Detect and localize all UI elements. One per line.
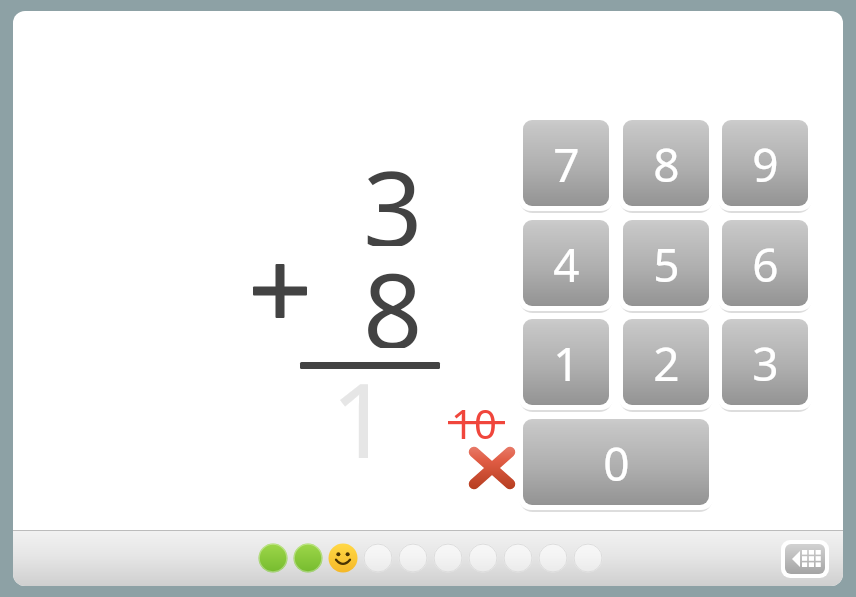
staticText: 6: [752, 233, 779, 296]
button[interactable]: 4: [518, 215, 614, 313]
button[interactable]: 7: [518, 115, 614, 213]
button[interactable]: 9: [717, 115, 813, 213]
button[interactable]: 3: [717, 314, 813, 412]
staticText: 8: [653, 133, 680, 196]
staticText: 10: [451, 396, 497, 442]
button[interactable]: 1: [518, 314, 614, 412]
staticText: 9: [752, 133, 779, 196]
button[interactable]: 5: [618, 215, 714, 313]
staticText: 7: [553, 133, 580, 196]
button[interactable]: 0: [518, 414, 714, 512]
staticText: 2: [653, 332, 680, 395]
staticText: 3: [752, 332, 779, 395]
staticText: 5: [653, 233, 680, 296]
staticText: 4: [553, 233, 580, 296]
staticText: 3: [363, 136, 423, 246]
staticText: 1: [553, 332, 580, 395]
button[interactable]: Hide keypad: [781, 540, 829, 578]
button[interactable]: 8: [618, 115, 714, 213]
staticText: 11: [331, 348, 441, 458]
staticText: 8: [363, 238, 423, 348]
staticText: 0: [603, 432, 630, 495]
button[interactable]: 2: [618, 314, 714, 412]
button[interactable]: 6: [717, 215, 813, 313]
